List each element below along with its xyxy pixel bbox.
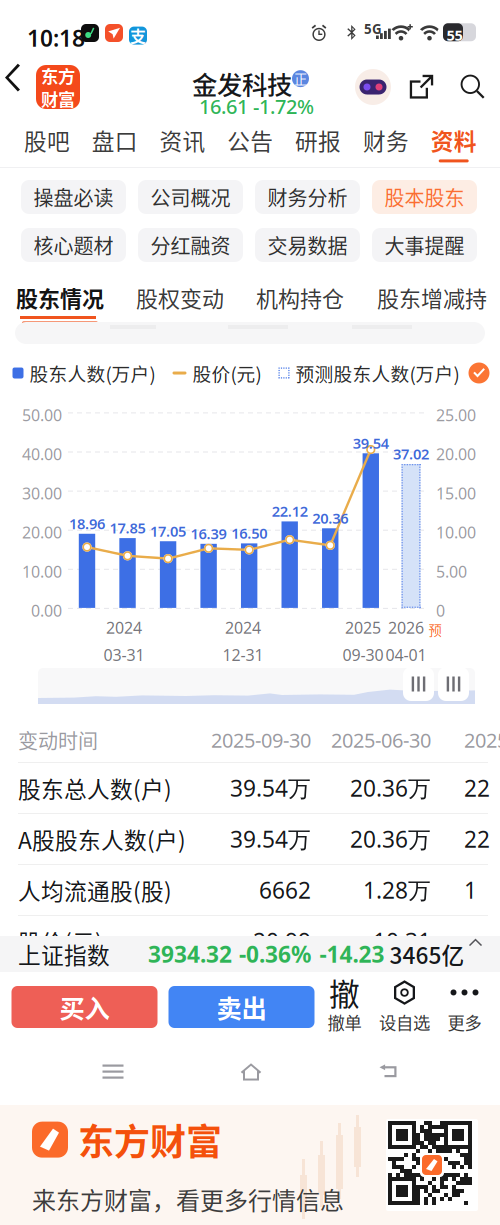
staticText: 资讯 xyxy=(159,124,205,156)
staticText: 10.00 xyxy=(22,561,62,582)
button[interactable]: AI 助手 xyxy=(350,62,396,112)
staticText: 20.36万 xyxy=(350,773,431,803)
staticText: 盘口 xyxy=(92,124,138,156)
staticText: 10.31 xyxy=(373,926,431,956)
button[interactable]: 机构持仓 xyxy=(258,280,342,326)
button[interactable]: 更多 xyxy=(434,979,494,1035)
staticText: 撤单 xyxy=(327,1009,361,1035)
staticText: 0.00 xyxy=(31,600,62,621)
staticText: 财富 xyxy=(41,86,75,111)
button[interactable]: 股权变动 xyxy=(138,280,222,326)
staticText: 设自选 xyxy=(379,1009,430,1035)
staticText: 6662 xyxy=(259,875,311,905)
staticText: 17.05 xyxy=(150,521,186,541)
staticText: 东方财富 xyxy=(78,1114,222,1166)
staticText: -0.36% xyxy=(239,939,311,969)
staticText: A股股东人数(户) xyxy=(18,823,186,855)
button[interactable]: 交易数据 xyxy=(255,228,360,262)
button[interactable]: 东方财富 xyxy=(36,65,80,109)
button[interactable]: 操盘必读 xyxy=(21,180,126,214)
staticText: 交易数据 xyxy=(267,230,347,259)
staticText: 2025 xyxy=(464,727,500,753)
button[interactable]: 买入 xyxy=(11,986,157,1028)
button[interactable]: 公司概况 xyxy=(138,180,243,214)
staticText: -1.72% xyxy=(253,93,314,120)
button[interactable]: 设自选 xyxy=(374,979,434,1035)
staticText: 大事提醒 xyxy=(384,230,464,259)
staticText: 机构持仓 xyxy=(256,282,344,313)
staticText: 股东人数(万户) xyxy=(29,359,155,386)
staticText: 20.36 xyxy=(312,508,348,528)
staticText: 2024 xyxy=(106,617,142,638)
staticText: 40.00 xyxy=(22,443,62,465)
staticText: 55 xyxy=(446,25,462,45)
button[interactable]: 分享 xyxy=(400,62,444,112)
staticText: 来东方财富，看更多行情信息 xyxy=(32,1182,344,1216)
staticText: 支 xyxy=(130,24,146,47)
staticText: 预 xyxy=(428,620,441,639)
staticText: 2026 xyxy=(388,617,424,638)
staticText: 研报 xyxy=(295,124,341,156)
staticText: 股价(元) xyxy=(18,925,103,957)
staticText: 22.12 xyxy=(272,501,308,521)
staticText: 20.00 xyxy=(436,443,476,465)
staticText: 变动时间 xyxy=(18,725,98,754)
button[interactable]: 股本股东 xyxy=(372,180,477,214)
button[interactable]: 返回 xyxy=(2,62,34,112)
button[interactable]: 搜索 xyxy=(452,62,494,112)
staticText: 10.00 xyxy=(436,522,476,543)
staticText: 5.00 xyxy=(436,561,467,582)
staticText: 10:18 xyxy=(27,23,85,53)
button[interactable]: 卖出 xyxy=(168,986,314,1028)
button[interactable]: 调整区间 xyxy=(403,667,434,701)
staticText: 20.36万 xyxy=(350,824,431,854)
button[interactable]: 财务 xyxy=(352,120,420,166)
staticText: 16.39 xyxy=(191,524,227,543)
button[interactable]: 股东情况 xyxy=(18,280,102,326)
staticText: 公司概况 xyxy=(150,182,230,211)
button[interactable]: 调整区间 xyxy=(438,667,469,701)
button[interactable]: 资料 xyxy=(420,120,488,166)
staticText: 3465亿 xyxy=(389,938,464,970)
staticText: 买入 xyxy=(59,989,109,1025)
button[interactable]: 公告 xyxy=(216,120,284,166)
button[interactable]: 返回 xyxy=(362,1049,413,1095)
staticText: 39.54万 xyxy=(230,773,311,803)
staticText: 核心题材 xyxy=(33,230,113,259)
staticText: 37.02 xyxy=(393,444,429,463)
staticText: 3934.32 xyxy=(148,939,232,969)
staticText: 股东情况 xyxy=(16,282,104,313)
staticText: 30.00 xyxy=(22,483,62,504)
staticText: 正 xyxy=(294,69,307,88)
button[interactable]: 主页 xyxy=(226,1048,276,1095)
button[interactable]: 核心题材 xyxy=(21,228,126,262)
button[interactable]: 股吧 xyxy=(13,120,81,166)
staticText: 20.99 xyxy=(253,926,311,956)
button[interactable]: 资讯 xyxy=(149,120,216,166)
button[interactable]: 分红融资 xyxy=(138,228,243,262)
button[interactable]: 最近任务 xyxy=(86,1048,139,1095)
staticText: 上证指数 xyxy=(18,938,110,970)
staticText: 更多 xyxy=(447,1009,481,1035)
staticText: 股权变动 xyxy=(136,282,224,313)
button[interactable]: 撤 xyxy=(314,979,374,1035)
button[interactable]: 股东增减持 xyxy=(381,280,483,326)
staticText: 2024 xyxy=(225,617,261,638)
button[interactable]: 财务分析 xyxy=(255,180,360,214)
staticText: 2025 xyxy=(345,617,381,638)
staticText: 12-31 xyxy=(222,644,263,665)
staticText: 16.50 xyxy=(231,523,267,543)
staticText: 股价(元) xyxy=(192,359,261,386)
staticText: 股本股东 xyxy=(384,182,464,211)
staticText: 撤 xyxy=(329,970,360,1015)
staticText: 03-31 xyxy=(103,644,144,665)
button[interactable]: 上证指数 xyxy=(0,936,500,972)
staticText: 预测股东人数(万户) xyxy=(295,359,459,386)
button[interactable]: 盘口 xyxy=(81,120,149,166)
staticText: 16.61 xyxy=(199,93,248,120)
staticText: 股东总人数(户) xyxy=(18,772,172,804)
staticText: 04-01 xyxy=(385,644,426,665)
button[interactable]: 大事提醒 xyxy=(372,228,477,262)
button[interactable]: 研报 xyxy=(284,120,352,166)
staticText: 17.85 xyxy=(109,518,145,538)
